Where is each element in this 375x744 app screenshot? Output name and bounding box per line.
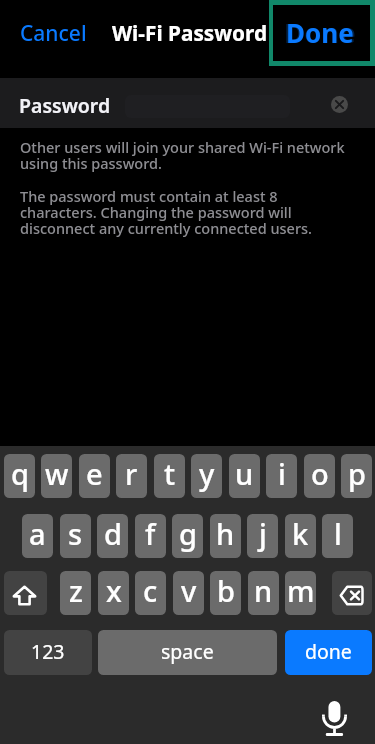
button[interactable]: s bbox=[60, 514, 91, 558]
button[interactable]: l bbox=[322, 514, 353, 558]
staticText: v bbox=[181, 571, 197, 610]
staticText: p bbox=[348, 454, 366, 493]
staticText: Wi-Fi Password bbox=[112, 19, 268, 47]
button[interactable]: q bbox=[4, 454, 35, 498]
staticText: Password bbox=[19, 92, 111, 119]
staticText: u bbox=[235, 454, 254, 493]
button[interactable]: g bbox=[172, 514, 203, 558]
staticText: f bbox=[145, 514, 156, 553]
staticText: Other users will join your shared Wi-Fi … bbox=[20, 137, 352, 173]
staticText: c bbox=[143, 571, 158, 610]
staticText: space bbox=[161, 638, 214, 665]
staticText: n bbox=[254, 571, 273, 610]
staticText: q bbox=[11, 454, 29, 493]
button[interactable]: done bbox=[285, 630, 372, 675]
staticText: Done bbox=[284, 14, 356, 51]
button[interactable]: h bbox=[210, 514, 241, 558]
staticText: k bbox=[292, 514, 309, 553]
staticText: j bbox=[259, 514, 267, 553]
staticText: e bbox=[86, 454, 103, 493]
button[interactable]: Clear text bbox=[331, 96, 348, 113]
staticText: 123 bbox=[31, 638, 65, 665]
button[interactable]: c bbox=[135, 571, 166, 615]
staticText: z bbox=[69, 571, 83, 610]
button[interactable]: u bbox=[229, 454, 260, 498]
button[interactable]: w bbox=[41, 454, 72, 498]
staticText: l bbox=[334, 514, 342, 553]
staticText: s bbox=[68, 514, 83, 553]
button[interactable]: p bbox=[341, 454, 372, 498]
staticText: t bbox=[164, 454, 176, 493]
button[interactable]: Cancel bbox=[20, 19, 87, 48]
staticText: Done bbox=[286, 15, 354, 50]
staticText: b bbox=[217, 571, 235, 610]
staticText: a bbox=[29, 514, 46, 553]
button[interactable]: d bbox=[97, 514, 128, 558]
staticText: The password must contain at least 8 cha… bbox=[20, 186, 352, 238]
button[interactable]: f bbox=[135, 514, 166, 558]
button[interactable]: n bbox=[248, 571, 279, 615]
button[interactable]: Backspace bbox=[332, 571, 372, 615]
staticText: h bbox=[216, 514, 235, 553]
button[interactable]: Done bbox=[269, 0, 375, 66]
staticText: d bbox=[104, 514, 122, 553]
button[interactable]: v bbox=[173, 571, 204, 615]
button[interactable]: t bbox=[154, 454, 185, 498]
button[interactable]: z bbox=[60, 571, 91, 615]
button[interactable]: Shift bbox=[4, 571, 47, 615]
staticText: r bbox=[125, 454, 138, 493]
staticText: i bbox=[278, 454, 286, 493]
button[interactable]: i bbox=[266, 454, 297, 498]
button[interactable]: e bbox=[79, 454, 110, 498]
staticText: done bbox=[305, 638, 352, 665]
button[interactable]: y bbox=[191, 454, 222, 498]
staticText: x bbox=[106, 571, 122, 610]
staticText: w bbox=[45, 454, 69, 493]
button[interactable]: 123 bbox=[4, 630, 92, 675]
button[interactable]: Password bbox=[0, 78, 375, 128]
staticText: g bbox=[179, 514, 197, 553]
staticText: o bbox=[311, 454, 329, 493]
staticText: m bbox=[287, 571, 315, 610]
button[interactable]: m bbox=[285, 571, 316, 615]
button[interactable]: x bbox=[98, 571, 129, 615]
button[interactable]: j bbox=[247, 514, 278, 558]
button[interactable]: space bbox=[98, 630, 277, 675]
button[interactable]: b bbox=[210, 571, 241, 615]
button[interactable]: k bbox=[285, 514, 316, 558]
button[interactable]: a bbox=[22, 514, 53, 558]
button[interactable]: o bbox=[304, 454, 335, 498]
button[interactable]: r bbox=[116, 454, 147, 498]
staticText: y bbox=[199, 454, 215, 493]
button[interactable]: Dictate bbox=[322, 701, 347, 736]
